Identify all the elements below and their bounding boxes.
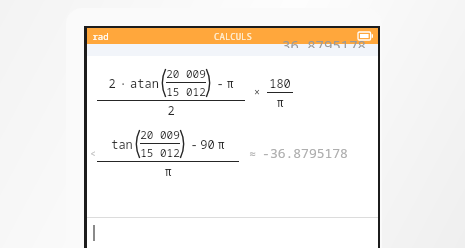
staticText: 20 009 bbox=[166, 66, 206, 81]
staticText: atan bbox=[130, 75, 159, 91]
staticText: 90 bbox=[200, 136, 215, 152]
staticText: 15 012 bbox=[166, 84, 206, 99]
staticText: 36.8795178 bbox=[282, 36, 366, 48]
staticText: -36.8795178 bbox=[262, 144, 348, 162]
staticText: π bbox=[276, 94, 284, 110]
staticText: · bbox=[119, 75, 127, 91]
staticText: × bbox=[254, 85, 260, 99]
button[interactable]: 2 bbox=[97, 66, 378, 118]
staticText: < bbox=[90, 147, 96, 159]
staticText: π bbox=[164, 163, 172, 179]
staticText: 15 012 bbox=[140, 145, 180, 160]
staticText: - bbox=[216, 75, 224, 91]
staticText: 180 bbox=[269, 75, 291, 91]
button[interactable]: < bbox=[90, 127, 378, 179]
staticText: 2 bbox=[108, 75, 116, 91]
staticText: tan bbox=[111, 136, 133, 152]
staticText: ≈ bbox=[249, 146, 256, 161]
button[interactable] bbox=[87, 218, 378, 248]
staticText: - bbox=[190, 136, 198, 152]
staticText: π bbox=[217, 136, 225, 152]
staticText: CALCULS bbox=[214, 30, 252, 42]
button[interactable]: rad bbox=[87, 28, 378, 44]
staticText: 20 009 bbox=[140, 127, 180, 142]
staticText: 2 bbox=[167, 102, 175, 118]
other: Battery bbox=[358, 32, 373, 40]
staticText: rad bbox=[92, 30, 109, 42]
staticText: π bbox=[226, 75, 234, 91]
